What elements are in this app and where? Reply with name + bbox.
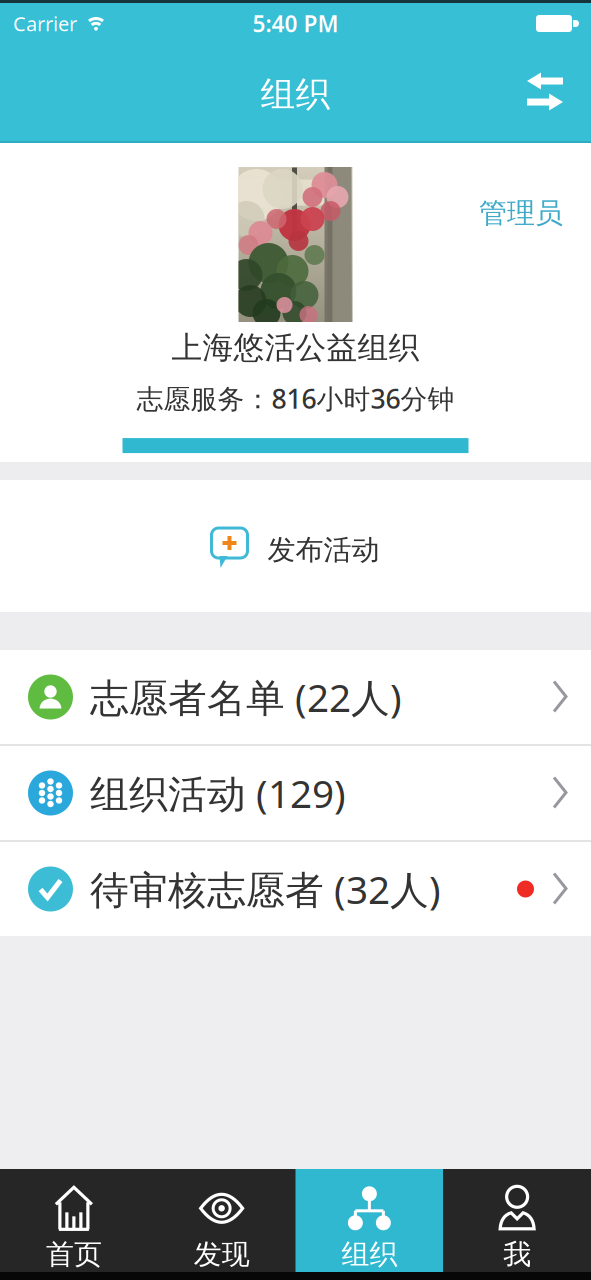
- staticText: 我: [503, 1237, 531, 1272]
- staticText: 组织活动 (129): [90, 767, 346, 819]
- button[interactable]: 首页: [0, 1169, 148, 1272]
- staticText: 上海悠活公益组织: [171, 329, 419, 367]
- staticText: 组织: [260, 73, 330, 116]
- staticText: 5:40 PM: [252, 8, 338, 38]
- staticText: Carrier: [13, 10, 77, 37]
- button[interactable]: 志愿者名单 (22人): [0, 650, 591, 744]
- staticText: 志愿者名单 (22人): [90, 671, 402, 723]
- staticText: 待审核志愿者 (32人): [90, 863, 441, 915]
- button[interactable]: 发布活动: [0, 480, 591, 612]
- button[interactable]: 我: [443, 1169, 591, 1272]
- staticText: 发布活动: [267, 533, 379, 567]
- staticText: 管理员: [479, 196, 563, 230]
- staticText: 志愿服务：816小时36分钟: [136, 381, 454, 416]
- button[interactable]: 切换组织: [527, 73, 591, 111]
- button[interactable]: 待审核志愿者 (32人): [0, 842, 591, 936]
- staticText: 首页: [46, 1237, 102, 1272]
- staticText: 组织: [341, 1237, 397, 1272]
- button[interactable]: 发现: [148, 1169, 296, 1272]
- button[interactable]: 组织活动 (129): [0, 746, 591, 840]
- button[interactable]: 组织: [295, 1169, 443, 1272]
- staticText: 发现: [194, 1237, 250, 1272]
